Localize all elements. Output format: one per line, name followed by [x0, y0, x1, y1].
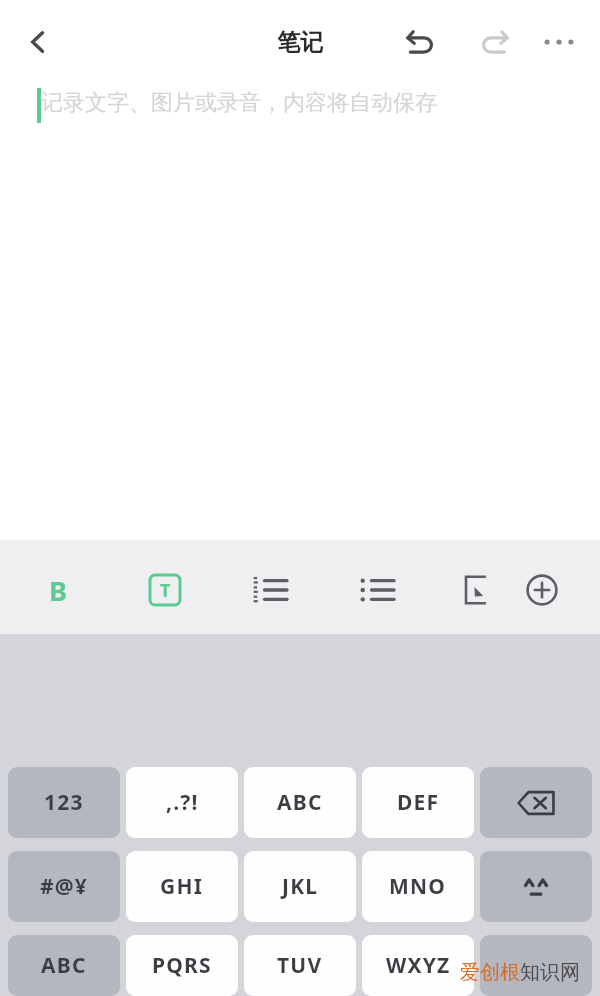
staticText: PQRS: [152, 951, 212, 980]
button[interactable]: Bulleted list: [350, 563, 404, 617]
button[interactable]: MNO: [362, 851, 474, 922]
button[interactable]: #@¥: [8, 851, 120, 922]
staticText: 笔记: [277, 28, 323, 57]
button[interactable]: Back: [8, 0, 68, 84]
staticText: 爱创根: [460, 960, 520, 985]
staticText: MNO: [389, 872, 447, 901]
staticText: GHI: [160, 872, 204, 901]
staticText: DEF: [397, 788, 440, 817]
staticText: T: [160, 578, 171, 603]
button[interactable]: Backspace: [480, 767, 592, 838]
button[interactable]: Redo: [463, 0, 527, 84]
staticText: TUV: [277, 951, 323, 980]
staticText: JKL: [282, 872, 319, 901]
button[interactable]: Key: [480, 935, 592, 996]
button[interactable]: JKL: [244, 851, 356, 922]
staticText: B: [49, 572, 67, 609]
staticText: WXYZ: [386, 951, 451, 980]
button[interactable]: Numbered list: [243, 563, 297, 617]
button[interactable]: DEF: [362, 767, 474, 838]
staticText: 123: [44, 788, 84, 817]
staticText: 记录文字、图片或录音，内容将自动保存: [41, 89, 437, 117]
button[interactable]: ,.?!: [126, 767, 238, 838]
button[interactable]: Undo: [388, 0, 452, 84]
button[interactable]: 123: [8, 767, 120, 838]
staticText: ABC: [41, 951, 87, 980]
button[interactable]: WXYZ: [362, 935, 474, 996]
button[interactable]: ABC: [8, 935, 120, 996]
button[interactable]: GHI: [126, 851, 238, 922]
staticText: 知识网: [520, 960, 580, 985]
staticText: #@¥: [40, 872, 89, 901]
staticText: ABC: [277, 788, 323, 817]
button[interactable]: More options: [527, 0, 591, 84]
button[interactable]: Handwriting: [451, 563, 505, 617]
staticText: ,.?!: [166, 788, 199, 817]
button[interactable]: Text style: [138, 563, 192, 617]
button[interactable]: TUV: [244, 935, 356, 996]
button[interactable]: Emoji: [480, 851, 592, 922]
button[interactable]: PQRS: [126, 935, 238, 996]
button[interactable]: ABC: [244, 767, 356, 838]
button[interactable]: Bold: [31, 563, 85, 617]
button[interactable]: Add: [515, 563, 569, 617]
